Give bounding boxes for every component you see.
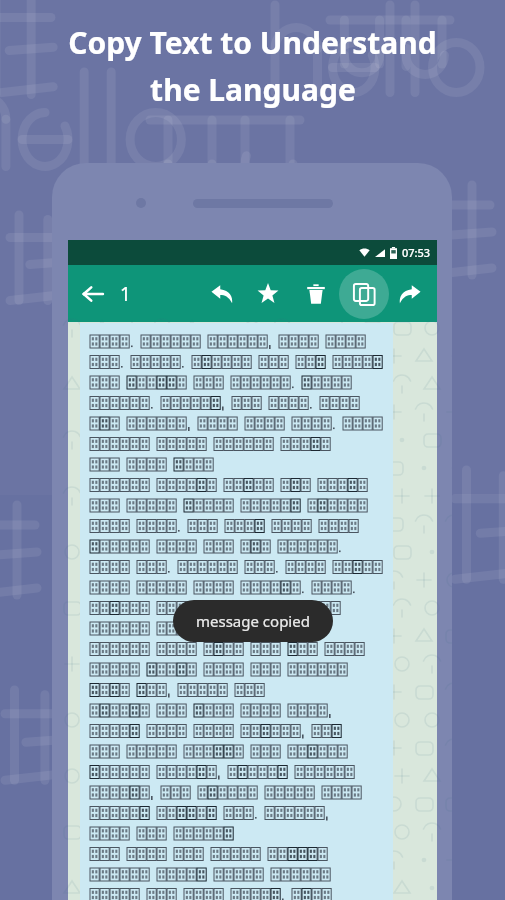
button[interactable]: Back: [82, 281, 131, 307]
button[interactable]: Star: [249, 275, 287, 313]
button[interactable]: Forward: [391, 275, 429, 313]
staticText: the Language: [150, 69, 356, 110]
button[interactable]: Copy: [339, 269, 389, 319]
button[interactable]: 5:15 PM: [80, 323, 393, 900]
other: Back: [82, 283, 104, 305]
staticText: 07:53: [402, 245, 431, 260]
button[interactable]: Delete: [297, 275, 335, 313]
button[interactable]: Reply: [203, 275, 241, 313]
staticText: message copied: [196, 611, 310, 631]
staticText: 1: [120, 281, 131, 307]
staticText: Copy Text to Understand: [68, 22, 437, 63]
